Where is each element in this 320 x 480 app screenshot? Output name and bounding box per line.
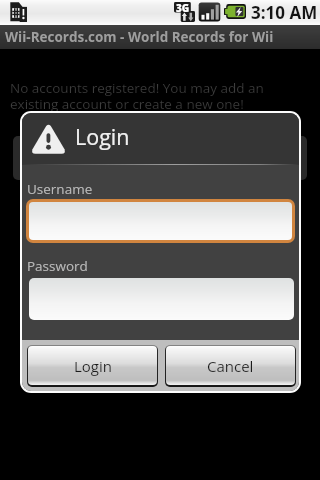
button[interactable]: [13, 136, 307, 180]
staticText: Login: [75, 122, 130, 151]
button[interactable]: [29, 202, 292, 240]
staticText: Username: [27, 180, 93, 198]
other: Battery charging: [224, 4, 246, 19]
other: 3G network: [174, 2, 195, 22]
other: No SIM card: [10, 1, 27, 22]
button[interactable]: [29, 278, 294, 320]
staticText: Wii-Records.com - World Records for Wii: [5, 28, 274, 46]
staticText: Cancel: [207, 356, 254, 376]
staticText: No accounts registered! You may add an e…: [10, 79, 266, 113]
staticText: 3G: [176, 1, 190, 15]
staticText: Password: [27, 257, 88, 275]
staticText: Login: [74, 356, 112, 376]
button[interactable]: Login: [28, 346, 157, 385]
other: Signal strength: [198, 2, 221, 22]
button[interactable]: Cancel: [166, 346, 295, 385]
staticText: 3:10 AM: [251, 1, 318, 24]
